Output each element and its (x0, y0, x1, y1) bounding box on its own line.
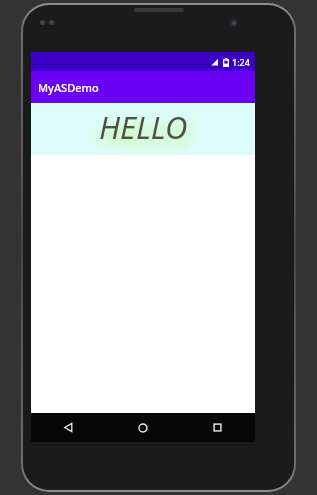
button[interactable]: Home (105, 413, 180, 442)
staticText: MyASDemo (38, 80, 99, 95)
button[interactable]: MyASDemo (31, 71, 255, 103)
button[interactable]: Back (31, 413, 105, 442)
staticText: 1:24 (232, 56, 250, 68)
staticText: HELLO (99, 106, 188, 148)
button[interactable]: Recent apps (180, 413, 255, 442)
